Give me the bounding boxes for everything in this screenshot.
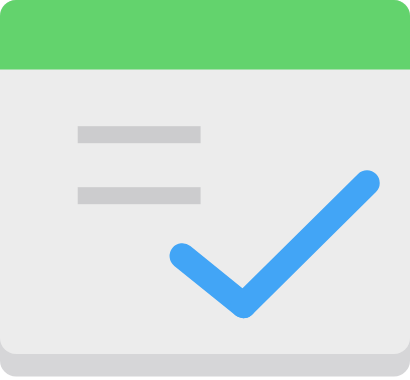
button[interactable]: Task completed illustration	[0, 0, 410, 380]
